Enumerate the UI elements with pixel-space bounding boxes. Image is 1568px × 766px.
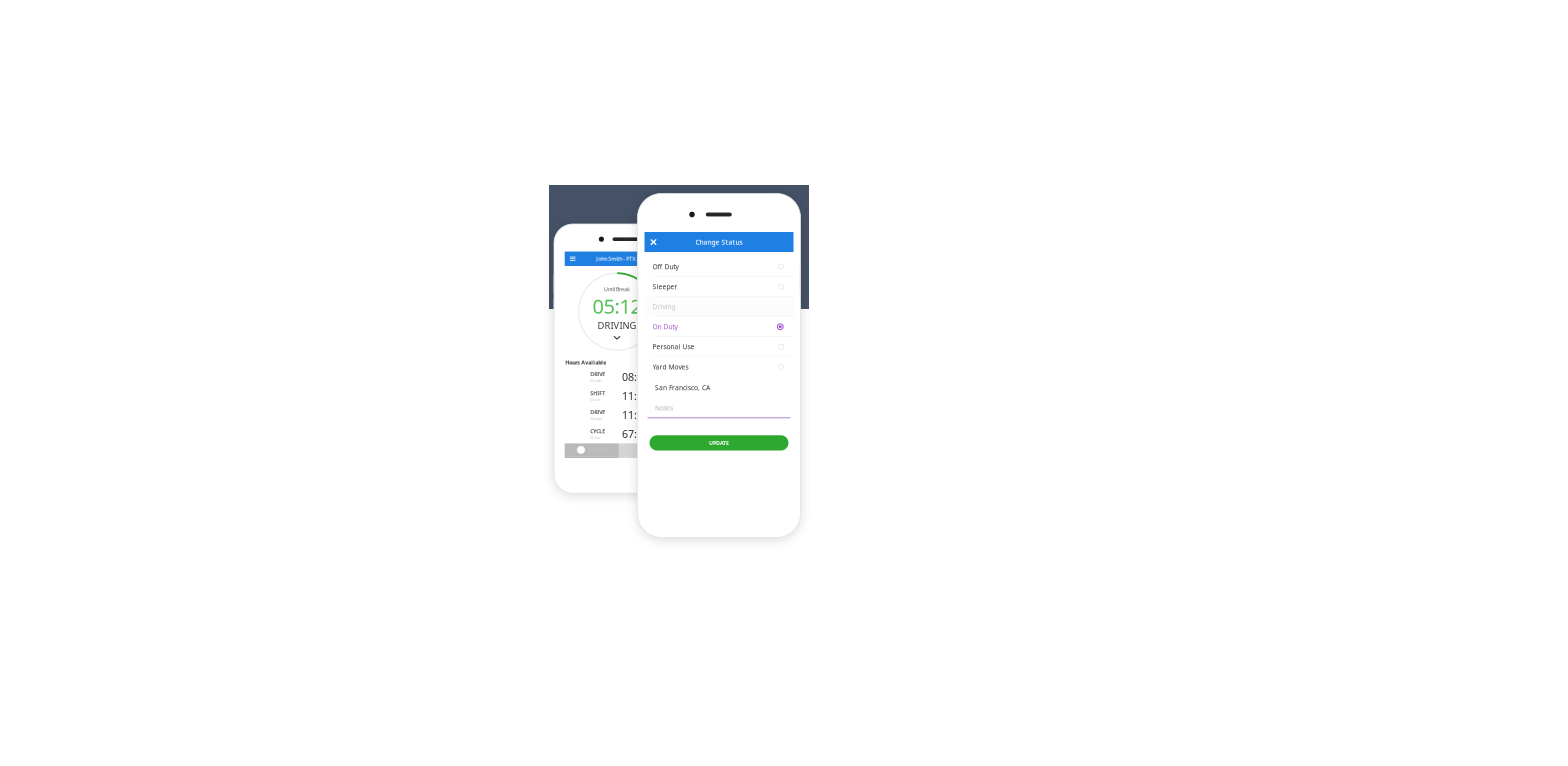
staticText: DRIVE [590,371,605,378]
staticText: Driving [652,302,675,311]
button[interactable]: STATUS [565,443,619,458]
button[interactable]: Sleeper [644,277,793,296]
button[interactable]: Personal Use [644,337,793,356]
button[interactable]: Logs [619,443,649,458]
staticText: CYCLE [590,428,605,435]
staticText: Sleeper [652,282,677,291]
staticText: On Duty [652,322,677,331]
button[interactable]: On Duty [644,317,793,336]
staticText: Break [590,378,601,383]
staticText: 05:12 [592,293,641,319]
staticText: Personal Use [652,342,694,351]
staticText: John Smith - PTX 2245 [596,255,648,262]
staticText: DRIVE [590,409,605,416]
staticText: DRIVING [597,319,636,332]
staticText: 08:00 [622,370,649,384]
staticText: Drive [590,435,600,440]
staticText: San Francisco, CA [655,383,710,392]
button[interactable]: Driving [644,297,793,316]
button[interactable]: Off Duty [644,257,793,276]
staticText: Sleeper [590,416,603,421]
button[interactable]: Menu [565,251,581,266]
staticText: STATUS [588,446,607,453]
staticText: Hours Available [565,359,606,366]
staticText: UPDATE [709,439,729,446]
staticText: 67:00 [622,427,649,441]
button[interactable]: More [649,443,680,458]
button[interactable]: UPDATE [649,435,788,450]
staticText: Notes [655,403,673,412]
button[interactable]: Yard Moves [644,357,793,376]
staticText: Yard Moves [652,362,688,371]
button[interactable]: Close [644,232,662,252]
staticText: 11:00 [622,408,649,422]
staticText: 11:00 [622,389,649,403]
staticText: Off Duty [652,262,678,271]
staticText: Drive [590,397,600,402]
staticText: Change Status [695,238,742,247]
staticText: SHIFT [590,390,605,397]
staticText: Until Break [604,286,630,293]
